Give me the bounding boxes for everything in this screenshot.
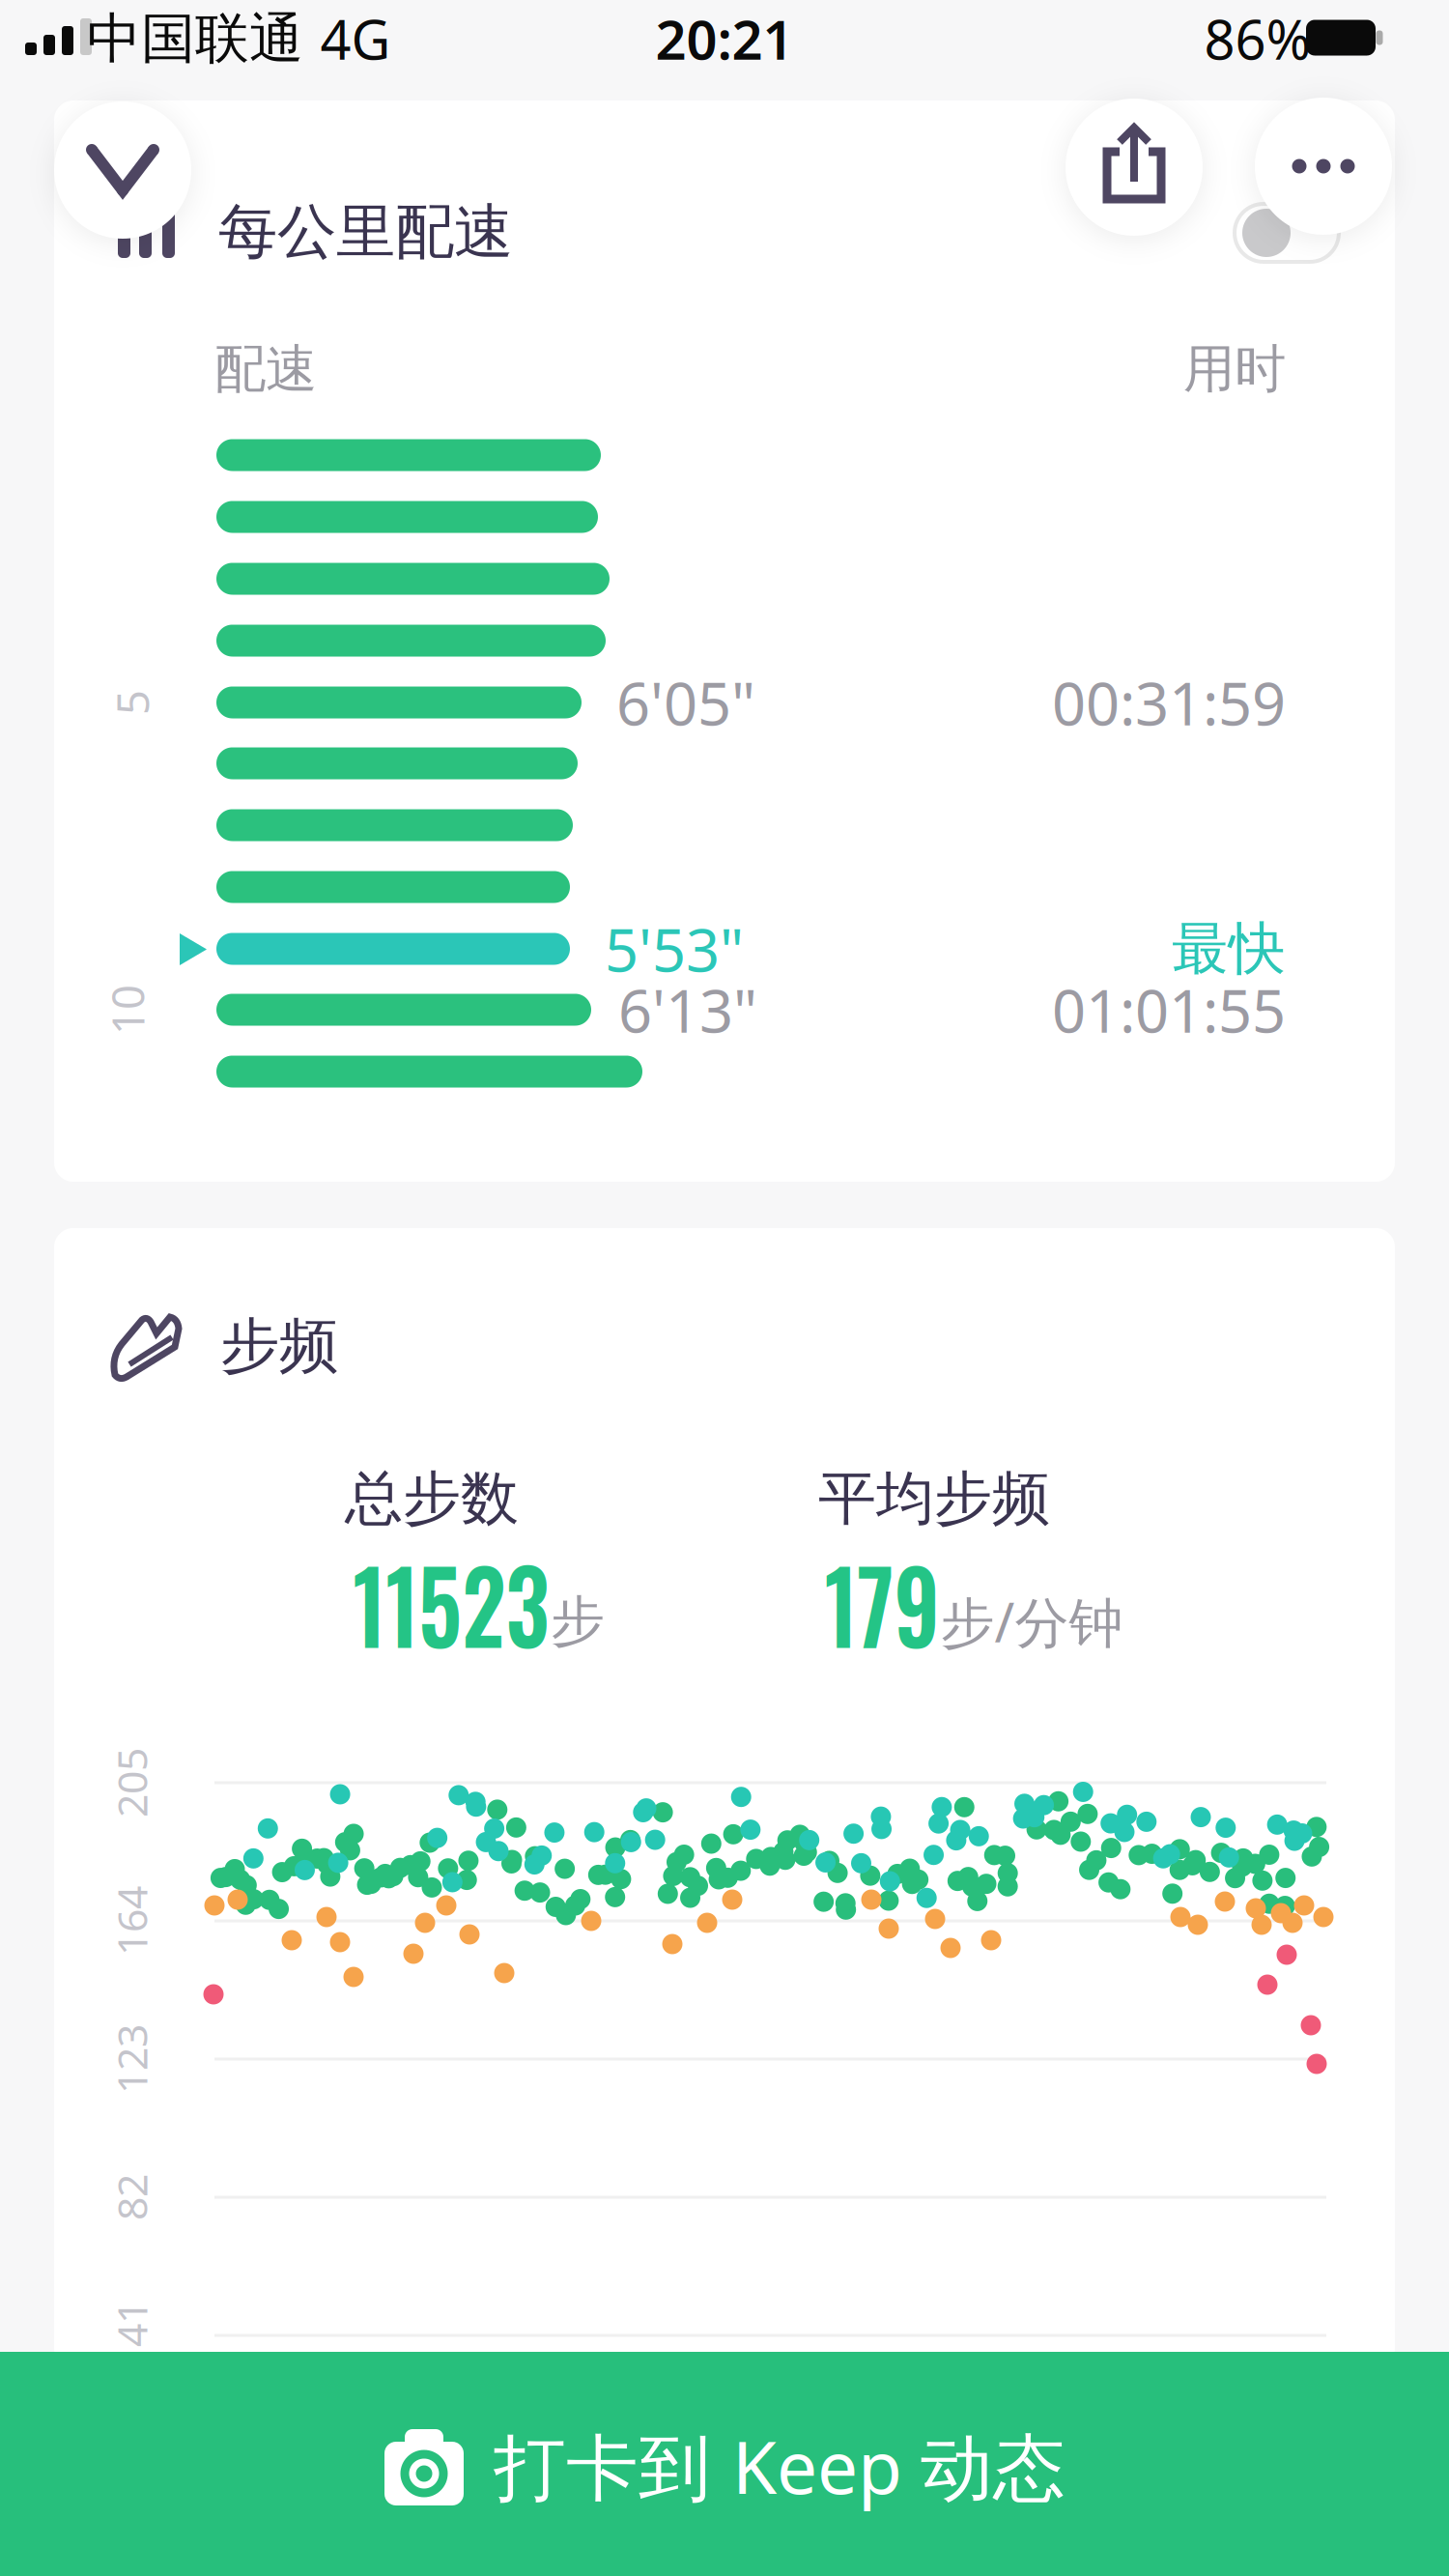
staticText: 00:31:59 xyxy=(1052,663,1286,742)
staticText: 步 xyxy=(551,1588,605,1655)
staticText: 总步数 xyxy=(345,1463,519,1534)
staticText: 11523 xyxy=(338,1529,564,1677)
staticText: 6'13" xyxy=(618,970,757,1049)
staticText: 4G xyxy=(320,3,391,75)
staticText: 41 xyxy=(108,2296,155,2351)
staticText: 最快 xyxy=(1172,914,1286,984)
staticText: 10 xyxy=(102,981,153,1039)
staticText: 用时 xyxy=(1183,337,1286,401)
staticText: 20:21 xyxy=(655,3,794,75)
staticText: 5 xyxy=(120,673,145,732)
button[interactable]: 收起 xyxy=(54,101,191,239)
staticText: 179 xyxy=(816,1529,948,1677)
staticText: 5'53" xyxy=(605,910,744,988)
staticText: 步频 xyxy=(220,1310,338,1382)
staticText: 中国联通 xyxy=(87,5,303,72)
staticText: 01:01:55 xyxy=(1052,970,1286,1049)
staticText: 配速 xyxy=(214,337,317,401)
staticText: 164 xyxy=(97,1894,166,1948)
staticText: 6'05" xyxy=(616,663,755,742)
staticText: 86% xyxy=(1204,3,1311,75)
staticText: 打卡到 Keep 动态 xyxy=(494,2418,1065,2514)
staticText: 步/分钟 xyxy=(940,1585,1123,1657)
button[interactable]: 打卡到 Keep 动态 xyxy=(0,2352,1449,2576)
staticText: 82 xyxy=(108,2170,155,2225)
button[interactable]: 分享 xyxy=(1065,99,1203,236)
button[interactable]: 地图开关 xyxy=(1235,204,1339,262)
staticText: 每公里配速 xyxy=(218,195,513,268)
staticText: 205 xyxy=(97,1755,166,1810)
staticText: 123 xyxy=(97,2032,166,2087)
staticText: 平均步频 xyxy=(818,1463,1050,1534)
button[interactable]: 更多 xyxy=(1255,98,1392,235)
